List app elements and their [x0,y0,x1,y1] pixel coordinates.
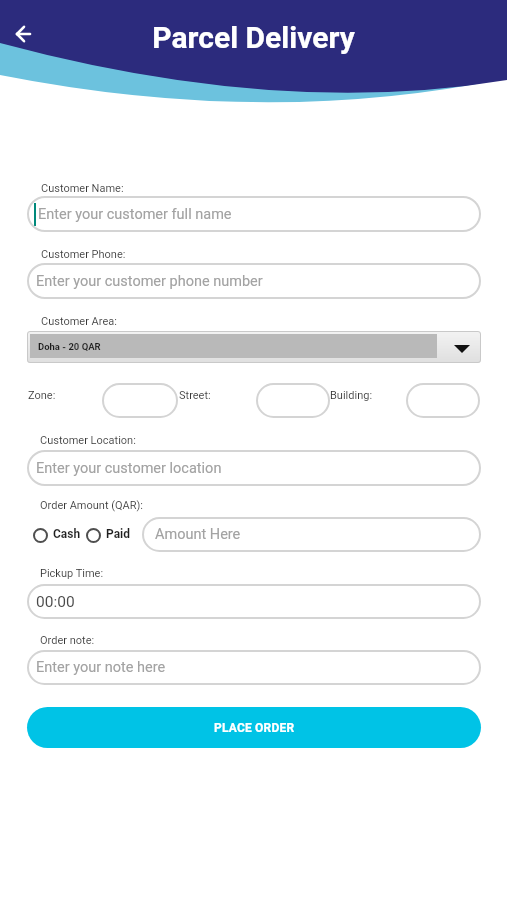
button[interactable]: Doha - 20 QAR [27,331,481,363]
staticText: Customer Phone: [41,248,126,261]
staticText: Cash [53,527,81,541]
staticText: PLACE ORDER [214,721,295,735]
staticText: Customer Location: [40,434,136,447]
button[interactable] [256,383,330,418]
button[interactable]: Enter your customer phone number [27,263,481,299]
staticText: Enter your customer full name [38,206,232,223]
staticText: Amount Here [155,526,241,543]
staticText: Enter your note here [36,659,166,676]
button[interactable]: Enter your note here [27,650,481,685]
staticText: Order Amount (QAR): [40,499,144,512]
staticText: Building: [330,389,373,402]
staticText: Customer Area: [41,315,117,328]
button[interactable] [406,383,480,418]
staticText: Parcel Delivery [0,20,507,55]
staticText: Enter your customer location [36,460,222,477]
staticText: Doha - 20 QAR [38,341,101,352]
staticText: Enter your customer phone number [36,273,263,290]
button[interactable] [8,18,40,50]
button[interactable] [80,522,136,548]
button[interactable] [28,522,84,548]
staticText: Paid [106,527,131,541]
staticText: Street: [179,389,211,402]
staticText: Customer Name: [41,182,124,195]
staticText: Zone: [28,389,56,402]
button[interactable]: 00:00 [27,584,481,619]
button[interactable]: Amount Here [142,517,481,552]
button[interactable]: Enter your customer location [27,450,481,486]
button[interactable]: PLACE ORDER [27,707,481,748]
staticText: Pickup Time: [40,567,104,580]
button[interactable] [102,383,178,418]
staticText: 00:00 [36,593,75,611]
staticText: Order note: [40,634,95,647]
button[interactable]: Enter your customer full name [27,196,481,232]
